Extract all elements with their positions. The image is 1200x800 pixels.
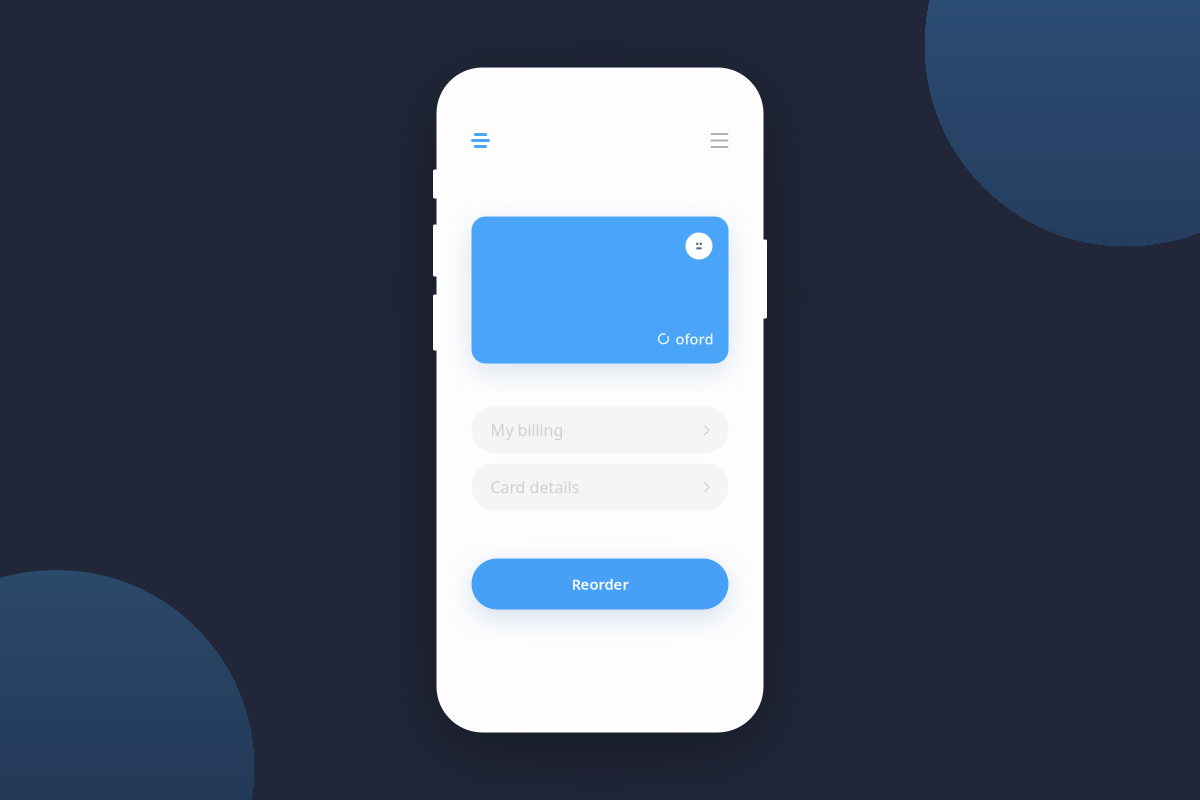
staticText: oford bbox=[675, 329, 713, 348]
button[interactable]: Menu bbox=[702, 123, 736, 157]
button[interactable]: My billing bbox=[471, 406, 728, 453]
button[interactable]: Card options bbox=[685, 232, 712, 259]
button[interactable]: Reorder bbox=[471, 558, 728, 609]
staticText: Reorder bbox=[571, 574, 628, 594]
staticText: My billing bbox=[490, 419, 563, 441]
button[interactable]: Filter bbox=[463, 123, 497, 157]
staticText: Card details bbox=[490, 476, 579, 498]
button[interactable]: Card details bbox=[471, 463, 728, 510]
